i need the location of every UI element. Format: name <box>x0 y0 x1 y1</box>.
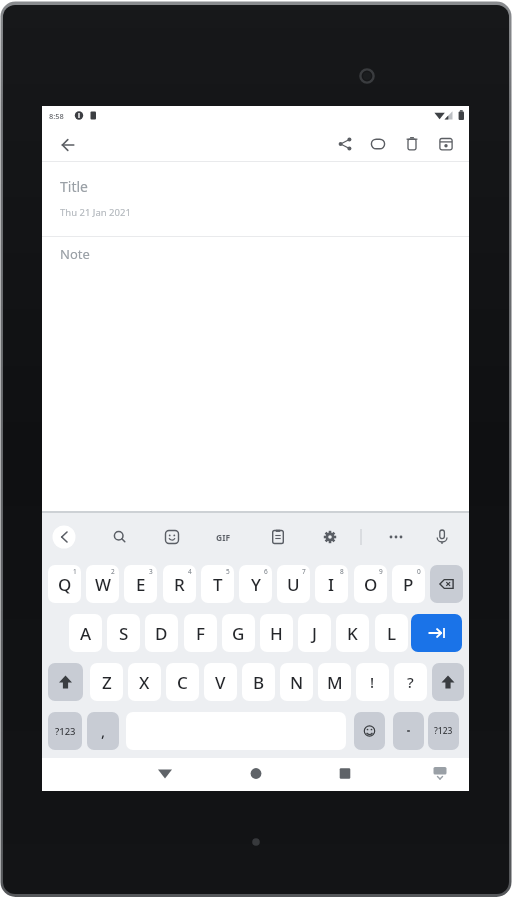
staticText: N <box>290 671 304 694</box>
button[interactable]: Q <box>48 565 81 603</box>
button[interactable] <box>411 614 462 652</box>
button[interactable]: L <box>375 614 408 652</box>
button[interactable]: R <box>163 565 196 603</box>
staticText: 6 <box>264 567 268 576</box>
button[interactable] <box>362 128 394 160</box>
button[interactable]: Title <box>42 162 469 236</box>
button[interactable] <box>424 758 456 791</box>
button[interactable] <box>329 128 361 160</box>
button[interactable]: D <box>145 614 178 652</box>
staticText: Thu 21 Jan 2021 <box>60 206 131 219</box>
button[interactable] <box>432 663 464 701</box>
button[interactable]: M <box>318 663 351 701</box>
staticText: C <box>177 671 188 694</box>
staticText: Note <box>60 245 90 263</box>
button[interactable]: G <box>222 614 255 652</box>
staticText: F <box>196 622 205 645</box>
button[interactable] <box>396 128 428 160</box>
staticText: ?123 <box>434 725 453 737</box>
button[interactable]: V <box>204 663 237 701</box>
staticText: 4 <box>188 567 192 576</box>
button[interactable]: N <box>280 663 313 701</box>
button[interactable]: J <box>298 614 331 652</box>
staticText: 3 <box>149 567 153 576</box>
button[interactable]: F <box>184 614 217 652</box>
staticText: 9 <box>379 567 383 576</box>
button[interactable]: S <box>107 614 140 652</box>
staticText: 7 <box>302 567 306 576</box>
staticText: Y <box>251 573 261 596</box>
staticText: Q <box>58 573 72 596</box>
button[interactable]: C <box>166 663 199 701</box>
staticText: E <box>136 573 146 596</box>
button[interactable]: ?123 <box>428 712 459 750</box>
button[interactable] <box>354 712 385 750</box>
button[interactable]: T <box>201 565 234 603</box>
button[interactable]: A <box>69 614 102 652</box>
button[interactable] <box>393 712 424 750</box>
staticText: Z <box>102 671 112 694</box>
staticText: GIF <box>216 532 231 544</box>
staticText: R <box>174 573 185 596</box>
button[interactable]: E <box>124 565 157 603</box>
button[interactable]: H <box>260 614 293 652</box>
staticText: Title <box>60 177 88 196</box>
staticText: S <box>119 622 129 645</box>
staticText: ? <box>407 672 414 692</box>
staticText: ! <box>370 672 375 692</box>
staticText: W <box>95 573 111 596</box>
button[interactable] <box>48 663 83 701</box>
staticText: ?123 <box>55 725 76 738</box>
staticText: 8:58 <box>49 111 64 121</box>
staticText: 1 <box>73 567 77 576</box>
staticText: P <box>403 573 414 596</box>
staticText: 0 <box>417 567 421 576</box>
staticText: B <box>253 671 265 694</box>
button[interactable]: ? <box>394 663 427 701</box>
button[interactable]: ! <box>356 663 389 701</box>
staticText: U <box>287 573 300 596</box>
button[interactable]: K <box>336 614 369 652</box>
button[interactable]: O <box>354 565 387 603</box>
staticText: L <box>387 622 397 645</box>
staticText: T <box>213 573 223 596</box>
button[interactable]: , <box>87 712 119 750</box>
staticText: A <box>80 622 92 645</box>
button[interactable]: X <box>128 663 161 701</box>
staticText: D <box>155 622 168 645</box>
button[interactable]: ?123 <box>48 712 82 750</box>
button[interactable]: Y <box>239 565 272 603</box>
button[interactable]: U <box>277 565 310 603</box>
staticText: M <box>327 671 343 694</box>
staticText: H <box>270 622 283 645</box>
staticText: 5 <box>226 567 230 576</box>
button[interactable] <box>329 758 361 791</box>
staticText: V <box>215 671 226 694</box>
button[interactable] <box>430 565 463 603</box>
staticText: 8 <box>340 567 344 576</box>
button[interactable] <box>149 758 181 791</box>
button[interactable] <box>240 758 272 791</box>
staticText: J <box>312 622 317 645</box>
staticText: I <box>328 573 335 596</box>
staticText: K <box>347 622 358 645</box>
staticText: O <box>364 573 378 596</box>
button[interactable] <box>52 129 84 161</box>
button[interactable]: Z <box>90 663 123 701</box>
button[interactable]: P <box>392 565 425 603</box>
button[interactable]: B <box>242 663 275 701</box>
staticText: X <box>139 671 150 694</box>
staticText: 2 <box>111 567 115 576</box>
button[interactable]: I <box>315 565 348 603</box>
button[interactable]: W <box>86 565 119 603</box>
staticText: , <box>101 721 106 741</box>
staticText: G <box>232 622 245 645</box>
button[interactable] <box>430 128 462 160</box>
